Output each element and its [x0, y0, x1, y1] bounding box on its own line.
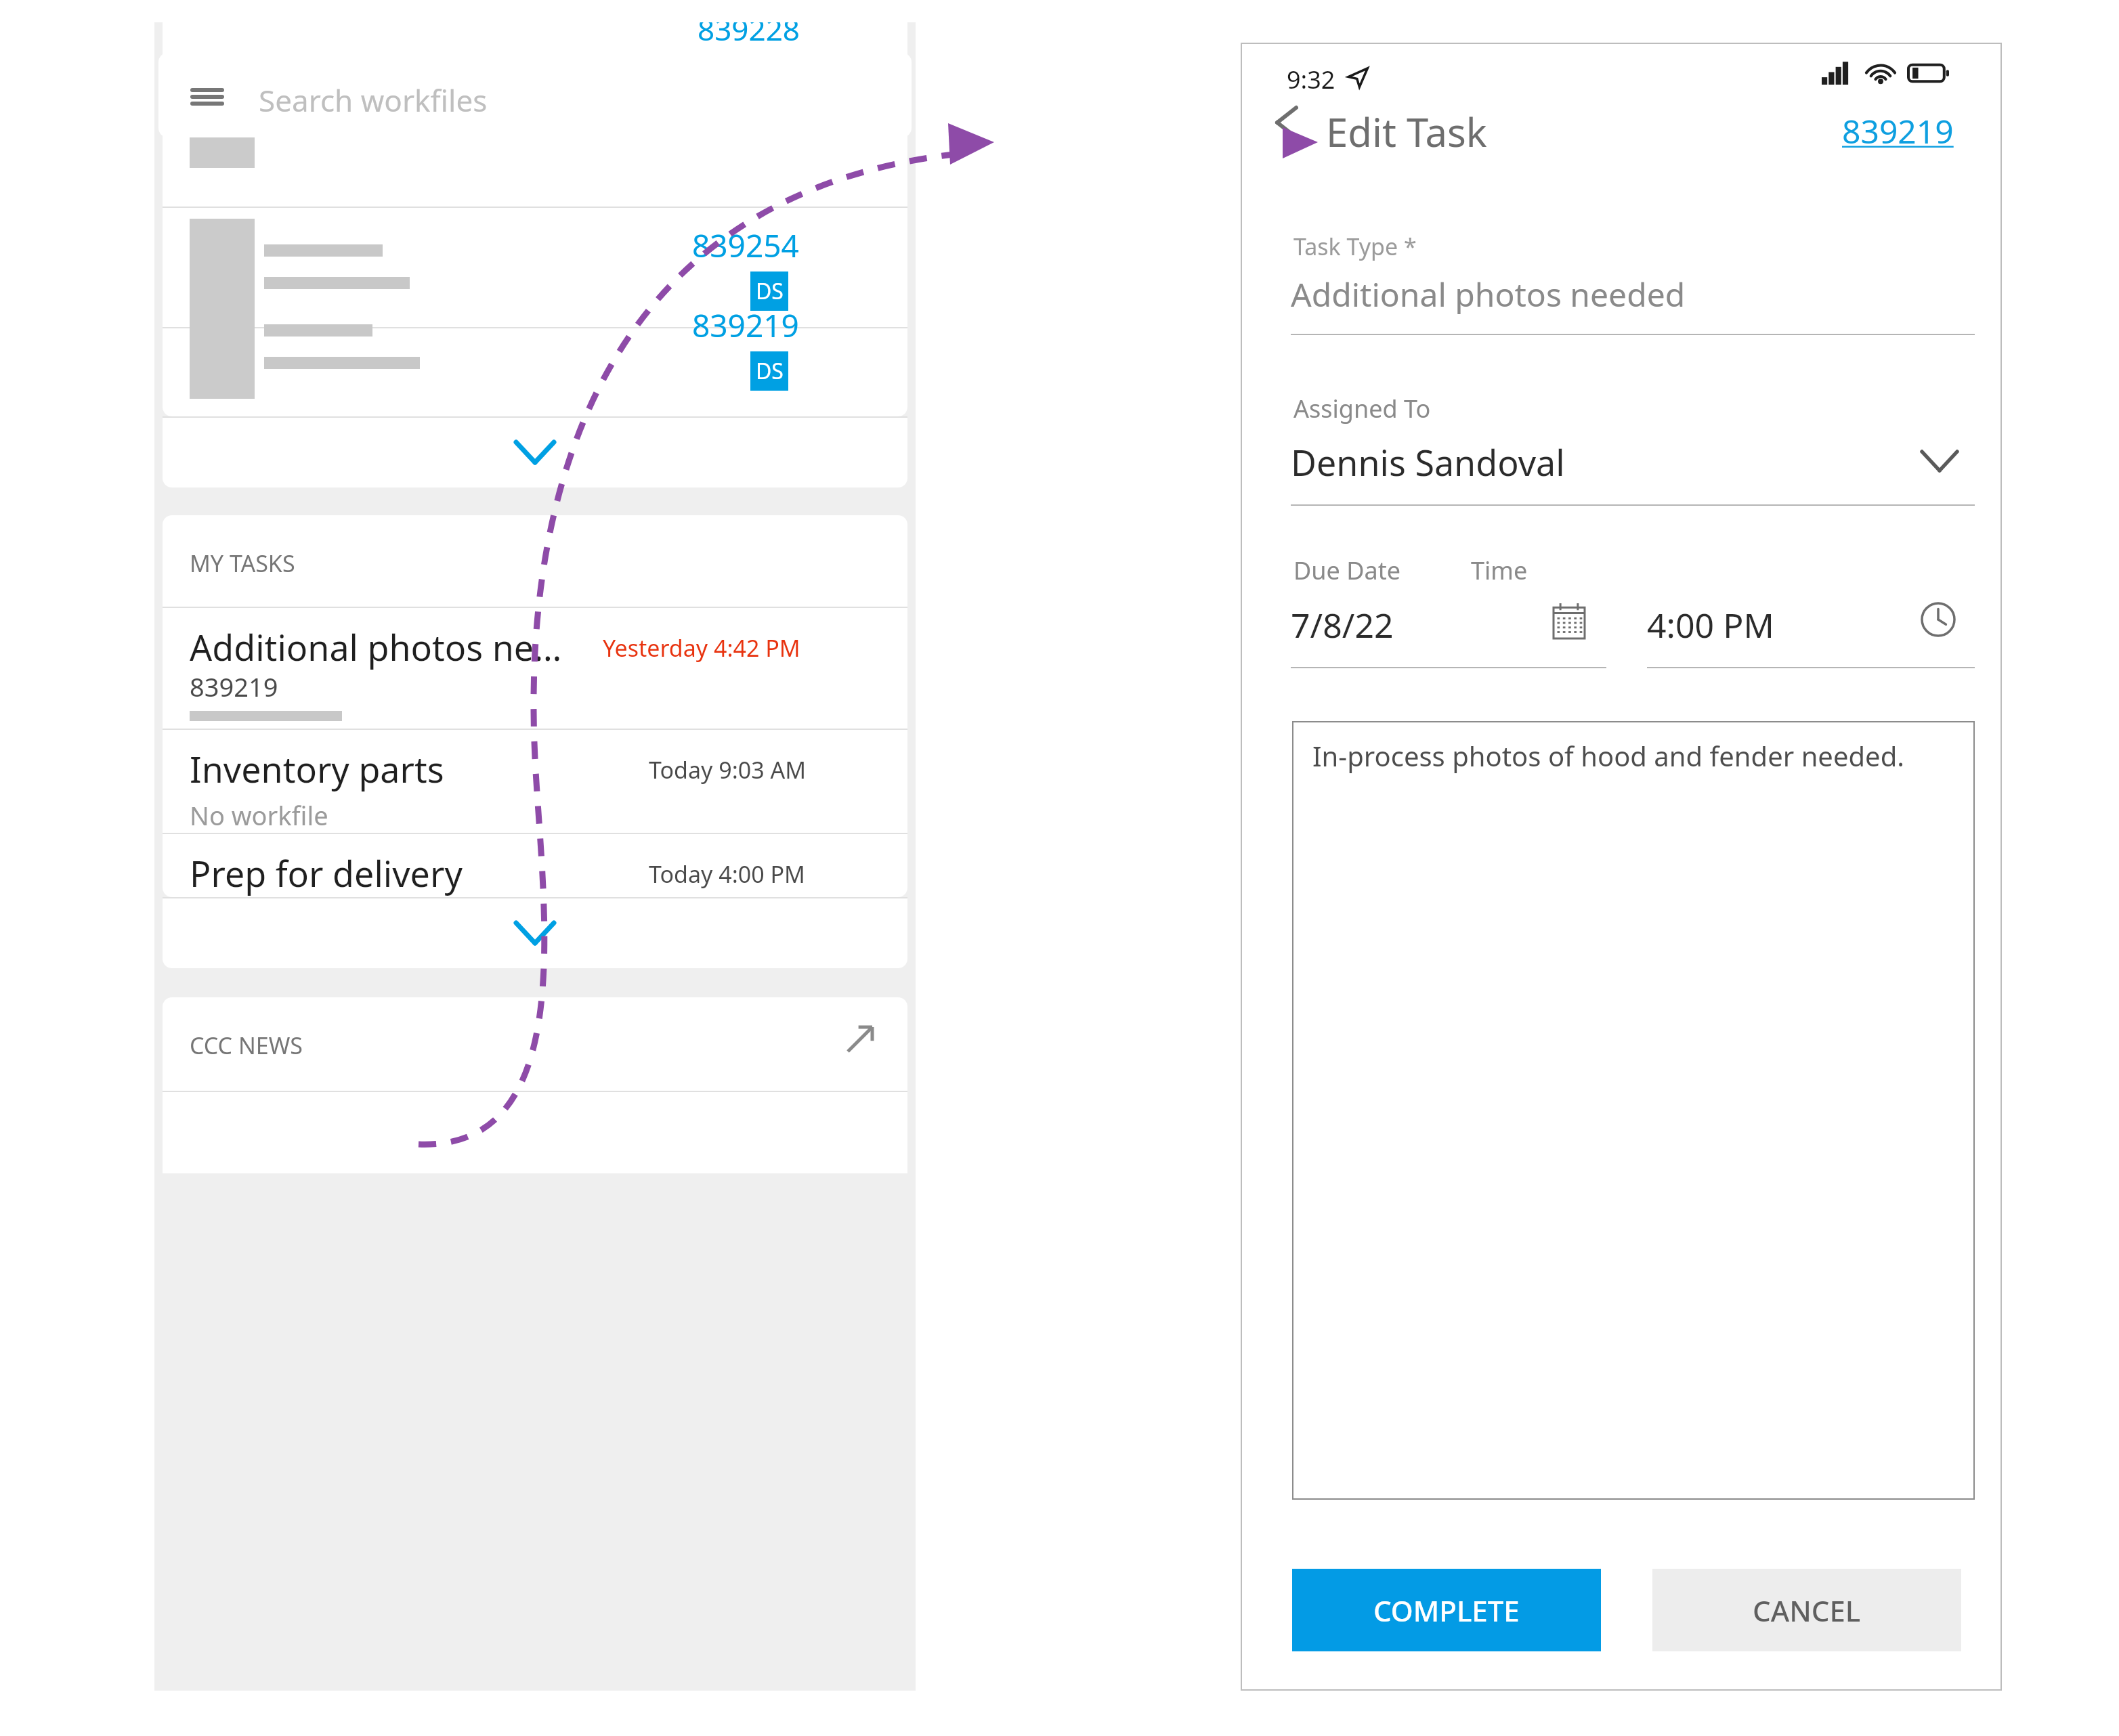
- staticText: DS: [756, 276, 784, 306]
- staticText: Due Date: [1293, 554, 1400, 587]
- button[interactable]: [163, 217, 907, 341]
- button[interactable]: 7/8/22: [1291, 598, 1606, 663]
- button[interactable]: 4:00 PM: [1647, 598, 1975, 663]
- staticText: No workfile: [190, 798, 328, 833]
- staticText: Additional photos ne…: [190, 623, 562, 671]
- staticText: Search workfiles: [259, 80, 488, 121]
- button[interactable]: COMPLETE: [1292, 1569, 1601, 1651]
- staticText: Dennis Sandoval: [1291, 438, 1565, 486]
- staticText: DS: [756, 356, 784, 386]
- staticText: 4:00 PM: [1647, 602, 1774, 648]
- staticText: 7/8/22: [1291, 602, 1394, 648]
- staticText: MY TASKS: [190, 548, 295, 579]
- staticText: Yesterday 4:42 PM: [603, 632, 800, 664]
- button[interactable]: CANCEL: [1652, 1569, 1961, 1651]
- staticText: 839219: [190, 669, 278, 704]
- staticText: Additional photos needed: [1291, 272, 1686, 316]
- staticText: Prep for delivery: [190, 849, 463, 897]
- other: Open CCC News: [847, 1024, 875, 1053]
- staticText: Assigned To: [1293, 392, 1431, 425]
- staticText: 839219: [692, 304, 799, 347]
- button[interactable]: [163, 87, 907, 191]
- staticText: Task Type *: [1293, 231, 1417, 262]
- button[interactable]: [163, 416, 907, 487]
- other: Pick date: [1554, 603, 1585, 638]
- button[interactable]: Back: [1275, 105, 1299, 140]
- staticText: 839233: [190, 895, 278, 897]
- staticText: In-process photos of hood and fender nee…: [1312, 737, 1904, 774]
- staticText: Today 9:03 AM: [649, 754, 807, 785]
- staticText: Today 4:00 PM: [649, 859, 805, 890]
- button[interactable]: Inventory parts: [163, 730, 907, 833]
- staticText: 839219: [1842, 109, 1954, 153]
- button[interactable]: In-process photos of hood and fender nee…: [1292, 721, 1975, 1500]
- button[interactable]: Dennis Sandoval: [1291, 435, 1975, 500]
- button[interactable]: Menu: [158, 53, 912, 137]
- other: Pick time: [1921, 602, 1956, 637]
- staticText: COMPLETE: [1373, 1591, 1520, 1630]
- staticText: 839254: [692, 224, 799, 267]
- staticText: 839228: [698, 22, 800, 49]
- button[interactable]: Additional photos needed: [1291, 269, 1975, 330]
- button[interactable]: [163, 897, 907, 968]
- button[interactable]: [163, 297, 907, 416]
- staticText: Time: [1471, 554, 1528, 587]
- button[interactable]: Prep for delivery: [163, 834, 907, 897]
- other: Menu: [192, 88, 222, 106]
- staticText: CANCEL: [1753, 1591, 1861, 1630]
- staticText: CCC NEWS: [190, 1030, 303, 1061]
- button[interactable]: Additional photos ne…: [163, 608, 907, 727]
- button[interactable]: CCC NEWS: [163, 997, 907, 1173]
- staticText: Edit Task: [1326, 105, 1487, 158]
- staticText: Inventory parts: [190, 745, 444, 793]
- button[interactable]: 839219: [1842, 109, 1954, 153]
- staticText: 9:32: [1287, 63, 1335, 96]
